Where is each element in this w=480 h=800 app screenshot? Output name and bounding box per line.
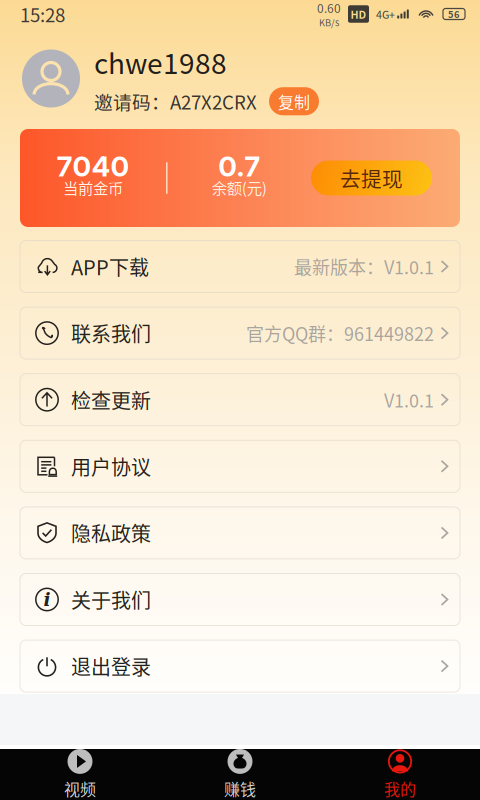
staticText: 去提现	[340, 163, 403, 193]
staticText: HD	[350, 6, 366, 22]
staticText: 最新版本：V1.0.1	[294, 253, 434, 280]
button[interactable]: 我的	[320, 749, 480, 800]
staticText: 邀请码：A27X2CRX	[94, 88, 257, 115]
button[interactable]: i	[20, 573, 460, 625]
staticText: KB/s	[319, 15, 339, 29]
button[interactable]: 用户协议	[20, 440, 460, 492]
button[interactable]: 复制	[269, 87, 319, 115]
button[interactable]: 去提现	[311, 160, 432, 195]
button[interactable]: 赚钱	[160, 749, 320, 800]
staticText: 4G+	[376, 6, 395, 22]
staticText: 0.7	[218, 149, 260, 183]
staticText: APP下载	[71, 252, 149, 281]
staticText: 当前金币	[63, 176, 123, 198]
staticText: 用户协议	[71, 452, 151, 481]
staticText: 检查更新	[71, 385, 151, 414]
button[interactable]: 检查更新	[20, 374, 460, 426]
button[interactable]: APP下载	[20, 240, 460, 292]
button[interactable]: 退出登录	[20, 640, 460, 692]
staticText: 7040	[56, 149, 129, 183]
staticText: 0.60	[317, 0, 341, 16]
staticText: 视频	[64, 777, 96, 800]
staticText: 退出登录	[71, 652, 151, 681]
button[interactable]: 隐私政策	[20, 507, 460, 559]
staticText: V1.0.1	[384, 387, 434, 413]
button[interactable]: 联系我们	[20, 307, 460, 359]
staticText: 联系我们	[71, 319, 151, 348]
staticText: 隐私政策	[71, 518, 151, 547]
button[interactable]: 视频	[0, 749, 160, 800]
staticText: chwe1988	[94, 42, 227, 82]
staticText: 官方QQ群：961449822	[246, 320, 434, 346]
staticText: 赚钱	[224, 777, 256, 800]
staticText: 15:28	[20, 0, 65, 27]
staticText: 复制	[278, 90, 310, 113]
staticText: 关于我们	[71, 585, 151, 614]
staticText: 56	[448, 7, 460, 21]
staticText: i	[43, 588, 50, 610]
staticText: 余额(元)	[212, 176, 267, 198]
staticText: 我的	[384, 777, 416, 800]
